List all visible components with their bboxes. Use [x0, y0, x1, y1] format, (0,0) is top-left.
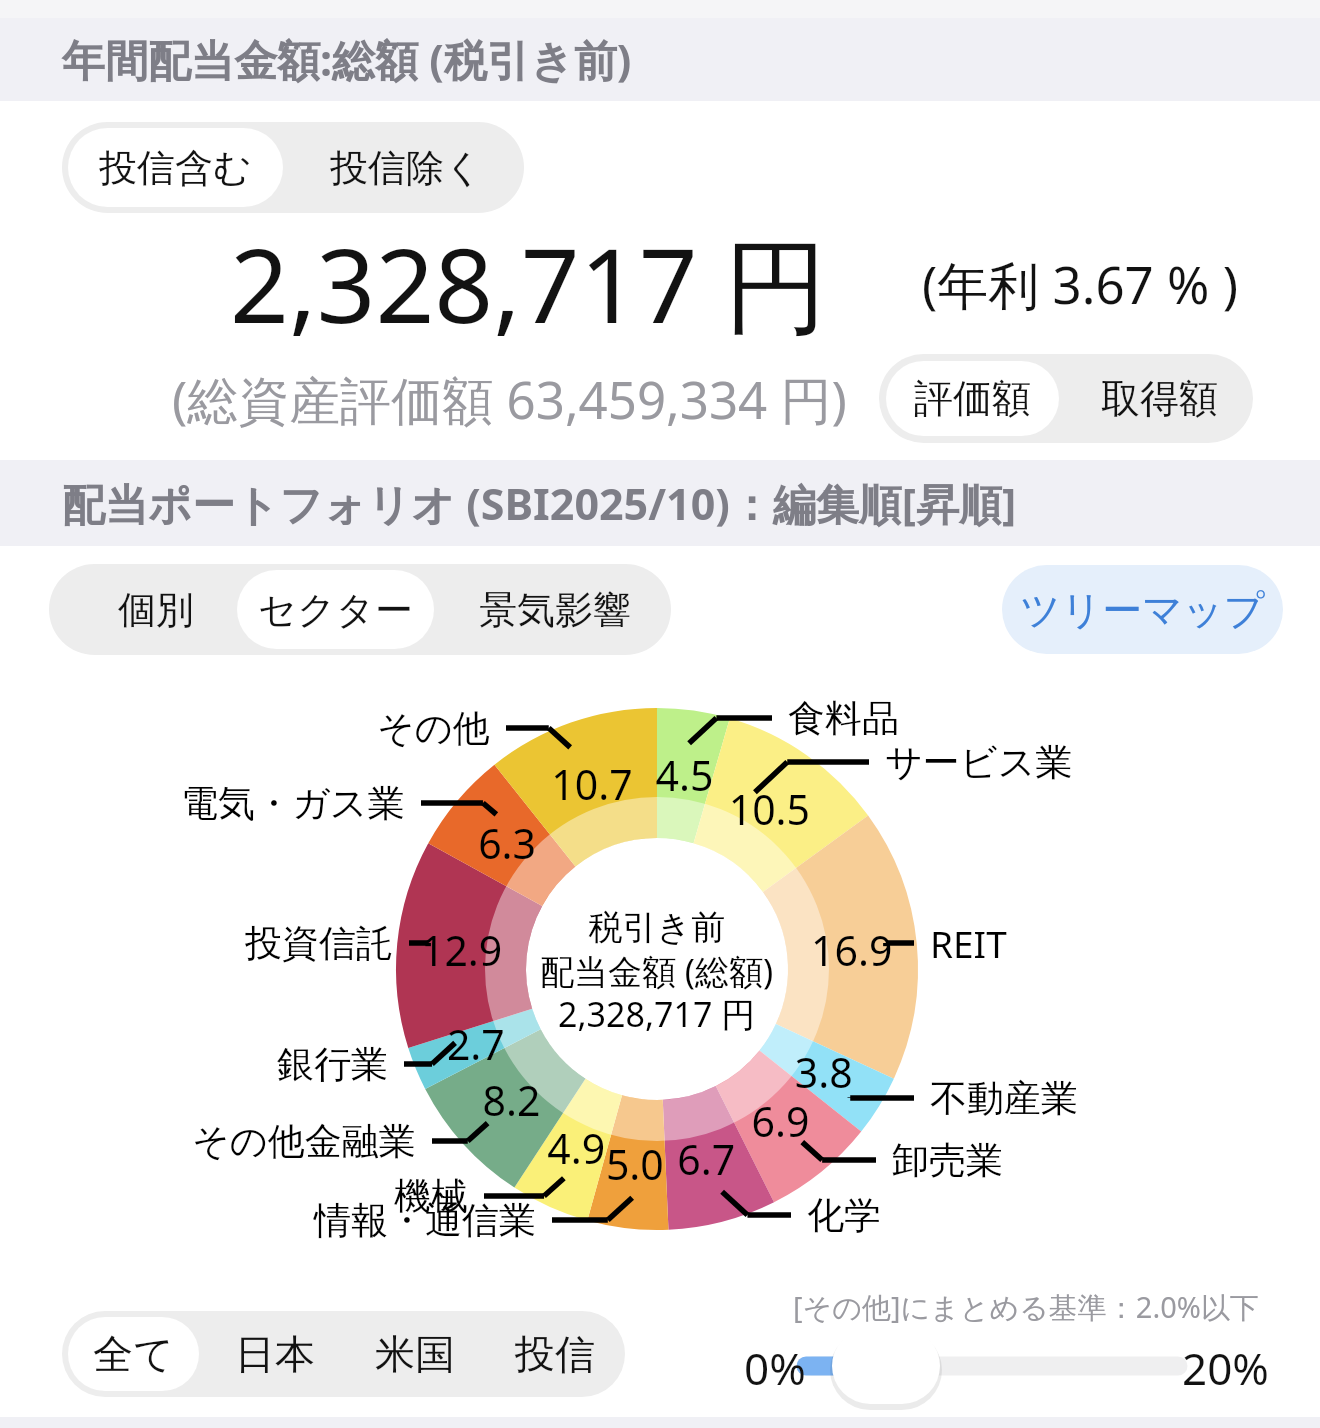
staticText: 年間配当金額:総額 (税引き前): [62, 30, 632, 89]
staticText: 評価額: [914, 374, 1031, 423]
button[interactable]: 米国: [345, 1311, 485, 1397]
button[interactable]: 全て: [68, 1317, 199, 1391]
staticText: 取得額: [1101, 374, 1218, 423]
staticText: 20%: [1182, 1338, 1269, 1398]
button[interactable]: 投信除く: [289, 122, 524, 213]
staticText: [その他]にまとめる基準：2.0%以下: [793, 1287, 1320, 1327]
staticText: 投信: [515, 1329, 595, 1379]
button[interactable]: セクター: [237, 570, 434, 649]
button[interactable]: Threshold slider: [744, 1285, 1320, 1415]
button[interactable]: ツリーマップ: [1002, 565, 1283, 654]
staticText: 米国: [375, 1329, 455, 1379]
button[interactable]: 日本: [205, 1311, 345, 1397]
staticText: 2,328,717 円: [230, 213, 828, 354]
staticText: ツリーマップ: [1020, 585, 1265, 635]
staticText: (総資産評価額 63,459,334 円): [172, 364, 847, 434]
button[interactable]: 投信: [485, 1311, 625, 1397]
staticText: 日本: [235, 1329, 315, 1379]
button[interactable]: 取得額: [1066, 354, 1253, 443]
staticText: (年利 3.67 % ): [922, 249, 1238, 319]
staticText: 投信含む: [99, 144, 252, 192]
staticText: 配当ポートフォリオ (SBI2025/10)：編集順[昇順]: [62, 474, 1017, 533]
button[interactable]: 評価額: [886, 361, 1059, 436]
staticText: 投信除く: [330, 144, 483, 192]
staticText: 0%: [744, 1338, 806, 1398]
button[interactable]: 個別: [49, 564, 231, 655]
staticText: 個別: [118, 586, 194, 634]
staticText: 景気影響: [479, 586, 631, 634]
button[interactable]: 投信含む: [68, 128, 283, 207]
staticText: セクター: [258, 586, 413, 634]
button[interactable]: 景気影響: [440, 564, 671, 655]
staticText: 全て: [93, 1329, 174, 1379]
